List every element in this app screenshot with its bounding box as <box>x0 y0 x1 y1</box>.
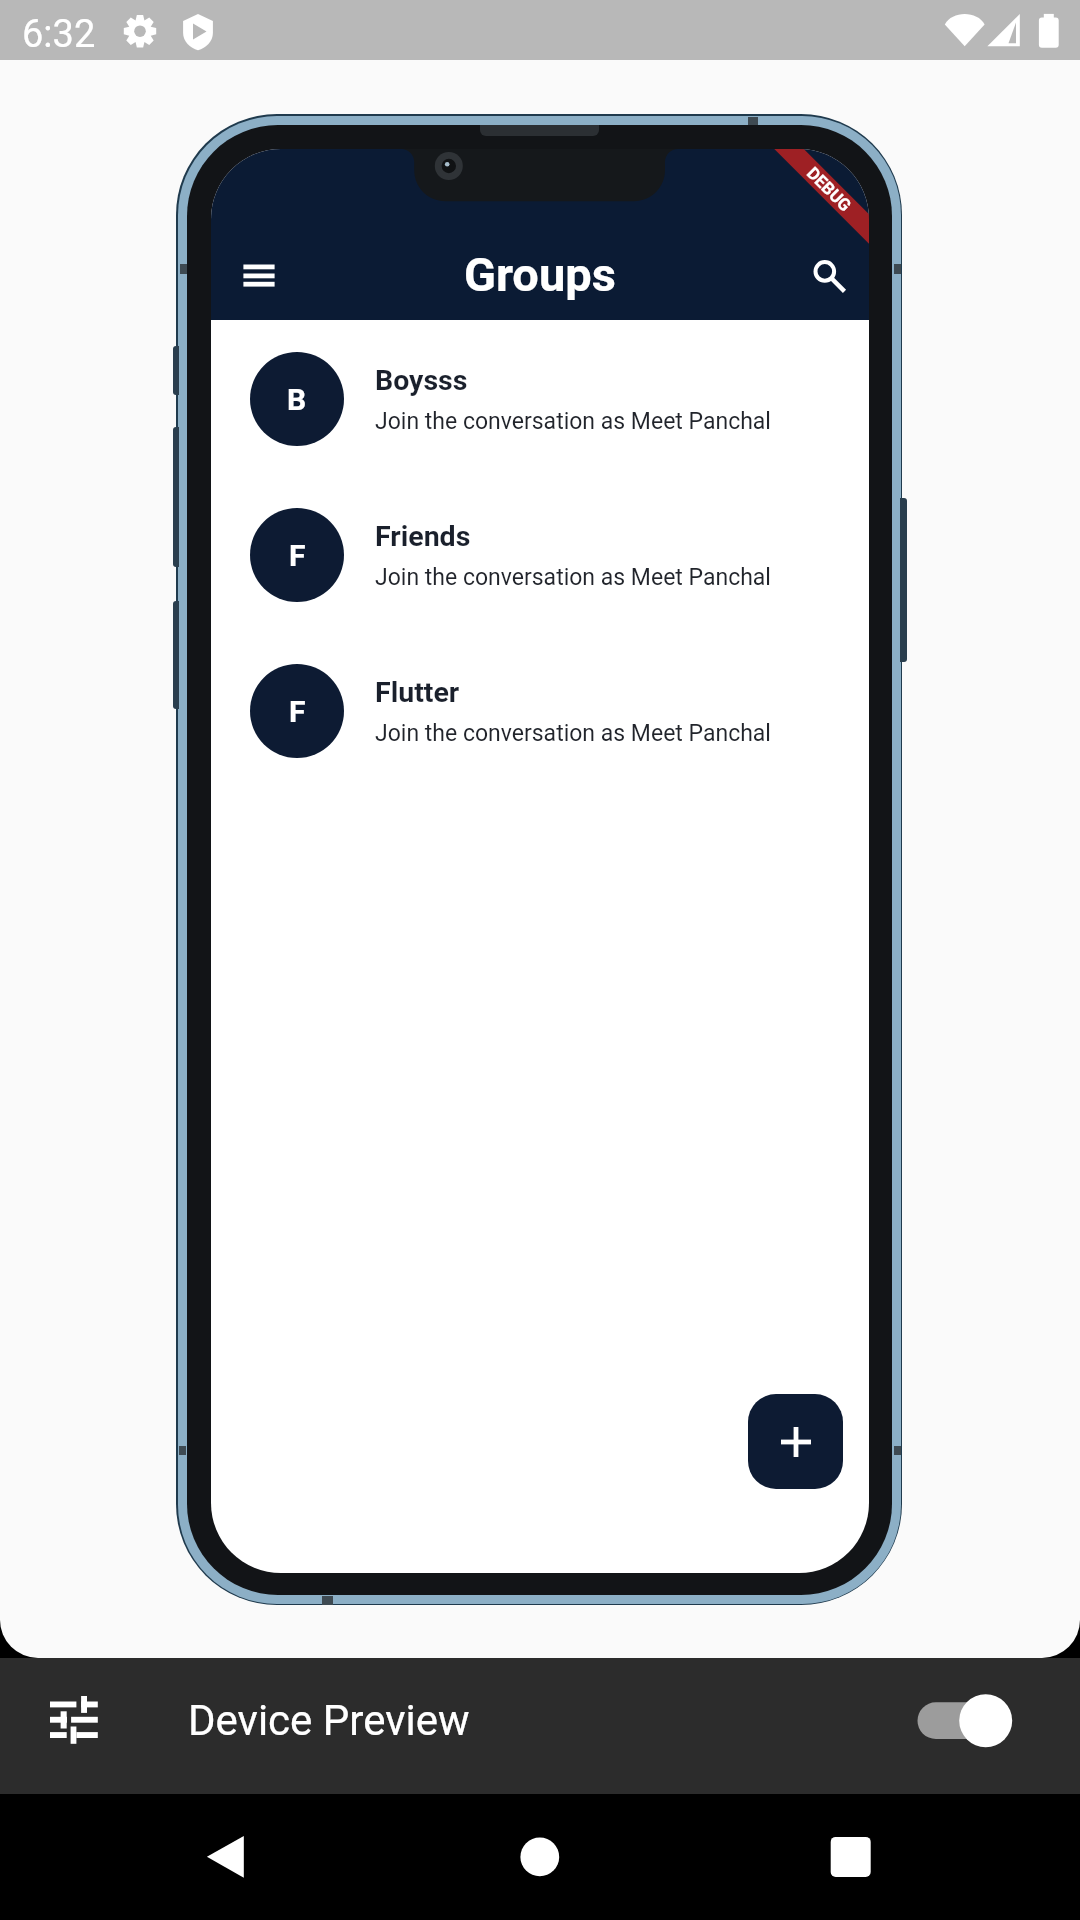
button[interactable]: Add group <box>748 1394 843 1489</box>
staticText: Join the conversation as Meet Panchal <box>375 564 771 591</box>
staticText: Boysss <box>375 364 468 397</box>
button[interactable]: Home <box>475 1812 605 1902</box>
staticText: F <box>289 538 306 573</box>
staticText: Join the conversation as Meet Panchal <box>375 408 771 435</box>
staticText: Device Preview <box>188 1696 470 1745</box>
button[interactable]: Back <box>160 1812 290 1902</box>
button[interactable]: Recent apps <box>785 1812 915 1902</box>
button[interactable]: Settings <box>30 1676 118 1764</box>
staticText: F <box>289 694 306 729</box>
staticText: 6:32 <box>22 12 96 57</box>
button[interactable]: F <box>211 477 869 633</box>
button[interactable]: F <box>211 633 869 789</box>
staticText: Friends <box>375 520 471 553</box>
button[interactable]: Menu <box>215 236 303 324</box>
staticText: DEBUG <box>803 163 856 216</box>
button[interactable]: B <box>211 321 869 477</box>
staticText: Groups <box>464 247 616 302</box>
button[interactable]: Search <box>781 227 869 315</box>
staticText: Join the conversation as Meet Panchal <box>375 720 771 747</box>
staticText: B <box>287 382 307 417</box>
staticText: Flutter <box>375 676 460 709</box>
button[interactable]: Toggle device preview <box>900 1682 1028 1770</box>
